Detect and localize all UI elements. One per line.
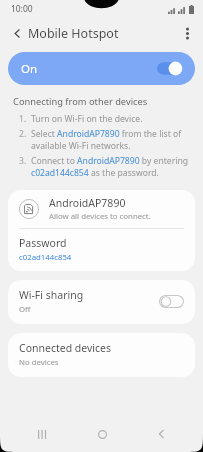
button[interactable]: Password: [8, 229, 195, 271]
button[interactable]: Connected devices: [8, 333, 195, 377]
staticText: Allow all devices to connect.: [49, 211, 151, 222]
staticText: AndroidAP7890: [49, 196, 126, 210]
button[interactable]: Home: [84, 416, 120, 452]
button[interactable]: Wi-Fi sharing: [8, 280, 195, 324]
staticText: Mobile Hotspot: [28, 25, 119, 42]
staticText: c02ad144c854: [19, 252, 72, 263]
staticText: Connected devices: [19, 341, 112, 355]
staticText: 3.: [19, 155, 27, 167]
staticText: Select AndroidAP7890 from the list of av…: [31, 128, 190, 152]
staticText: Turn on Wi-Fi on the device.: [31, 113, 143, 125]
staticText: On: [21, 61, 38, 77]
staticText: 10:00: [11, 3, 33, 15]
button[interactable]: Recent apps: [24, 416, 60, 452]
button[interactable]: On: [8, 52, 195, 85]
button[interactable]: Back: [143, 416, 179, 452]
staticText: Wi-Fi sharing: [19, 288, 84, 302]
button[interactable]: More options: [174, 20, 200, 46]
staticText: Connecting from other devices: [13, 95, 148, 108]
button[interactable]: Back: [4, 20, 30, 46]
staticText: 2.: [19, 128, 27, 140]
staticText: Connect to AndroidAP7890 by entering c02…: [31, 155, 190, 179]
staticText: Password: [19, 236, 67, 250]
staticText: No devices: [19, 357, 59, 368]
staticText: 1.: [19, 113, 27, 125]
button[interactable]: AndroidAP7890: [8, 190, 195, 228]
staticText: Off: [19, 304, 31, 315]
